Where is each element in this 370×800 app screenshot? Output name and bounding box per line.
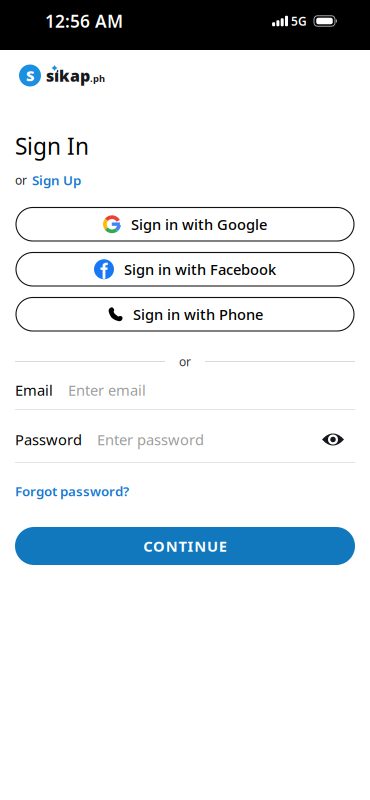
- staticText: or: [15, 172, 27, 188]
- button[interactable]: CONTINUE: [15, 527, 355, 565]
- button[interactable]: Sign in with Facebook: [16, 252, 354, 286]
- staticText: Enter email: [68, 380, 146, 400]
- button[interactable]: Sign in with Phone: [16, 297, 354, 331]
- button[interactable]: Sign Up: [32, 171, 81, 189]
- staticText: Sign In: [15, 131, 89, 161]
- button[interactable]: Sign in with Google: [16, 207, 354, 241]
- staticText: sikap: [46, 65, 90, 86]
- button[interactable]: [322, 433, 344, 446]
- staticText: Sign Up: [32, 171, 81, 189]
- staticText: CONTINUE: [143, 536, 227, 556]
- staticText: .ph: [90, 72, 105, 85]
- staticText: Forgot password?: [15, 482, 129, 500]
- staticText: Sign in with Phone: [133, 304, 263, 324]
- staticText: S: [26, 66, 34, 85]
- staticText: Password: [15, 430, 82, 449]
- staticText: Sign in with Google: [131, 214, 267, 234]
- staticText: Sign in with Facebook: [124, 259, 276, 279]
- button[interactable]: Email: [15, 380, 370, 400]
- staticText: or: [179, 353, 191, 369]
- button[interactable]: Password: [15, 429, 370, 449]
- staticText: Enter password: [97, 430, 204, 449]
- staticText: 5G: [291, 13, 307, 29]
- button[interactable]: Forgot password?: [15, 482, 129, 500]
- staticText: Email: [15, 380, 53, 400]
- staticText: 12:56 AM: [45, 9, 123, 32]
